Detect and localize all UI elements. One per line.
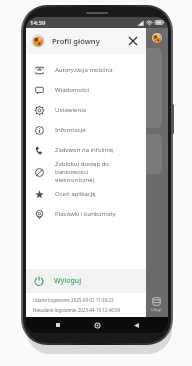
staticText: Autoryzacja mobilna	[55, 66, 113, 74]
staticText: Usługi	[151, 307, 162, 312]
button[interactable]: Wyloguj	[26, 269, 146, 293]
staticText: Oceń aplikację	[55, 190, 96, 198]
staticText: Placówki i bankomaty	[55, 210, 116, 218]
button[interactable]: Zadzwoń na infolinię	[26, 140, 146, 160]
button[interactable]: Placówki i bankomaty	[26, 204, 146, 224]
button[interactable]: Home	[90, 318, 104, 332]
staticText: Informacje	[55, 126, 86, 134]
staticText: Udane logowanie 2025-09-01 11:39:23	[33, 297, 114, 303]
staticText: Nieudane logowanie 2025-04-15 12:46:59	[33, 307, 121, 313]
staticText: Zadzwoń na infolinię	[55, 146, 114, 154]
staticText: 14:59	[30, 19, 46, 27]
button[interactable]: Zablokuj dostęp do bankowości elektronic…	[26, 160, 146, 184]
button[interactable]: Wiadomości	[26, 80, 146, 100]
staticText: Wyloguj	[54, 276, 82, 286]
staticText: Profil główny	[52, 36, 100, 46]
button[interactable]: Recent apps	[51, 318, 65, 332]
button[interactable]: Close	[126, 34, 140, 48]
button[interactable]: Ustawienia	[26, 100, 146, 120]
staticText: Wiadomości	[55, 86, 90, 94]
staticText: Ustawienia	[55, 106, 87, 114]
button[interactable]: Oceń aplikację	[26, 184, 146, 204]
button[interactable]: Back	[129, 318, 143, 332]
button[interactable]: Autoryzacja mobilna	[26, 60, 146, 80]
staticText: Zablokuj dostęp do bankowości elektronic…	[55, 160, 140, 184]
button[interactable]: Informacje	[26, 120, 146, 140]
button[interactable]: Profil główny	[26, 28, 146, 54]
